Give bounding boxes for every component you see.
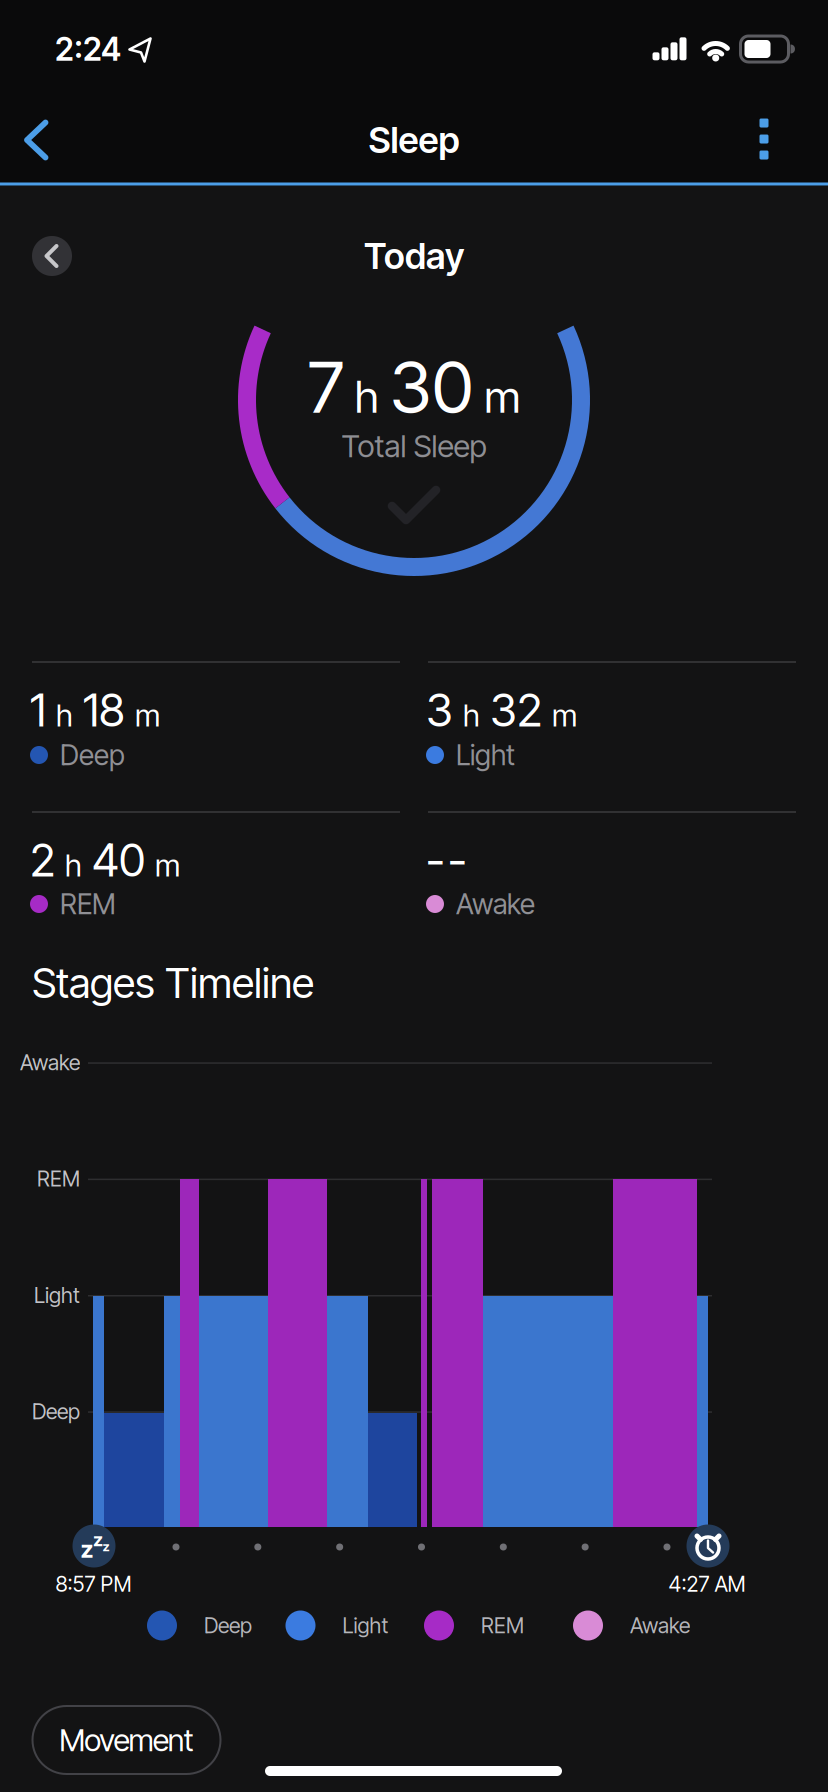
staticText: 18 xyxy=(83,683,125,737)
staticText: Awake xyxy=(456,887,535,920)
staticText: Light xyxy=(342,1613,388,1638)
staticText: REM xyxy=(37,1166,80,1191)
staticText: 4:27 AM xyxy=(668,1571,745,1597)
staticText: -- xyxy=(426,833,467,887)
staticText: 8:57 PM xyxy=(55,1571,131,1597)
staticText: Total Sleep xyxy=(341,428,486,464)
staticText: Sleep xyxy=(368,119,459,161)
button[interactable]: Back xyxy=(0,116,76,164)
staticText: Today xyxy=(364,235,464,277)
staticText: h xyxy=(463,697,480,733)
button[interactable]: Movement xyxy=(32,1706,220,1774)
staticText: Deep xyxy=(204,1613,252,1638)
staticText: 2 xyxy=(30,833,55,887)
staticText: Deep xyxy=(60,738,125,771)
button[interactable]: Previous day xyxy=(32,236,72,276)
staticText: Awake xyxy=(630,1613,690,1638)
staticText: REM xyxy=(481,1613,524,1638)
staticText: z xyxy=(102,1539,109,1554)
staticText: Light xyxy=(34,1283,80,1308)
staticText: m xyxy=(135,697,160,733)
staticText: m xyxy=(155,847,180,883)
staticText: 3 xyxy=(426,683,453,737)
staticText: REM xyxy=(60,887,116,920)
staticText: Awake xyxy=(20,1050,80,1075)
staticText: Movement xyxy=(59,1722,194,1758)
staticText: 7 h 30 m xyxy=(308,345,520,429)
staticText: 40 xyxy=(92,833,145,887)
staticText: z xyxy=(93,1528,103,1550)
staticText: 1 xyxy=(30,683,46,737)
staticText: z xyxy=(80,1535,93,1563)
staticText: Deep xyxy=(32,1399,80,1424)
staticText: Light xyxy=(456,738,515,771)
button[interactable]: More options xyxy=(740,115,788,163)
staticText: 32 xyxy=(490,683,542,737)
staticText: h xyxy=(56,697,73,733)
staticText: m xyxy=(552,697,577,733)
staticText: 2:24 xyxy=(55,30,121,68)
staticText: h xyxy=(65,847,82,883)
staticText: Stages Timeline xyxy=(32,959,314,1007)
